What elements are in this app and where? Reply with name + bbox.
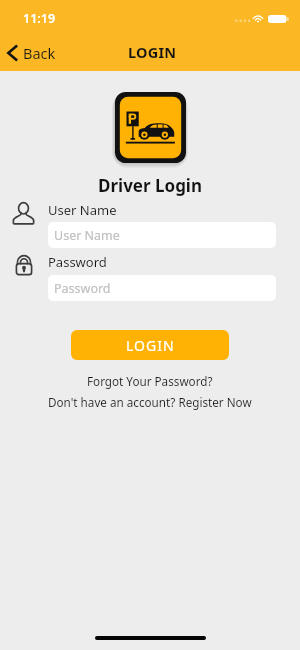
button[interactable]: Forgot Your Password? bbox=[87, 373, 213, 389]
staticText: Back bbox=[23, 43, 56, 63]
button[interactable]: Don't have an account? Register Now bbox=[48, 394, 252, 410]
staticText: Password bbox=[48, 253, 107, 271]
staticText: User Name bbox=[48, 201, 117, 219]
staticText: User Name bbox=[54, 227, 120, 244]
staticText: 11:19 bbox=[23, 10, 56, 27]
button[interactable]: Back bbox=[2, 40, 66, 66]
button[interactable]: LOGIN bbox=[71, 330, 229, 360]
button[interactable]: Password bbox=[48, 275, 276, 301]
staticText: Password bbox=[54, 280, 111, 297]
staticText: LOGIN bbox=[126, 336, 175, 355]
staticText: Driver Login bbox=[98, 174, 203, 197]
staticText: LOGIN bbox=[128, 42, 177, 62]
button[interactable]: User Name bbox=[48, 222, 276, 248]
